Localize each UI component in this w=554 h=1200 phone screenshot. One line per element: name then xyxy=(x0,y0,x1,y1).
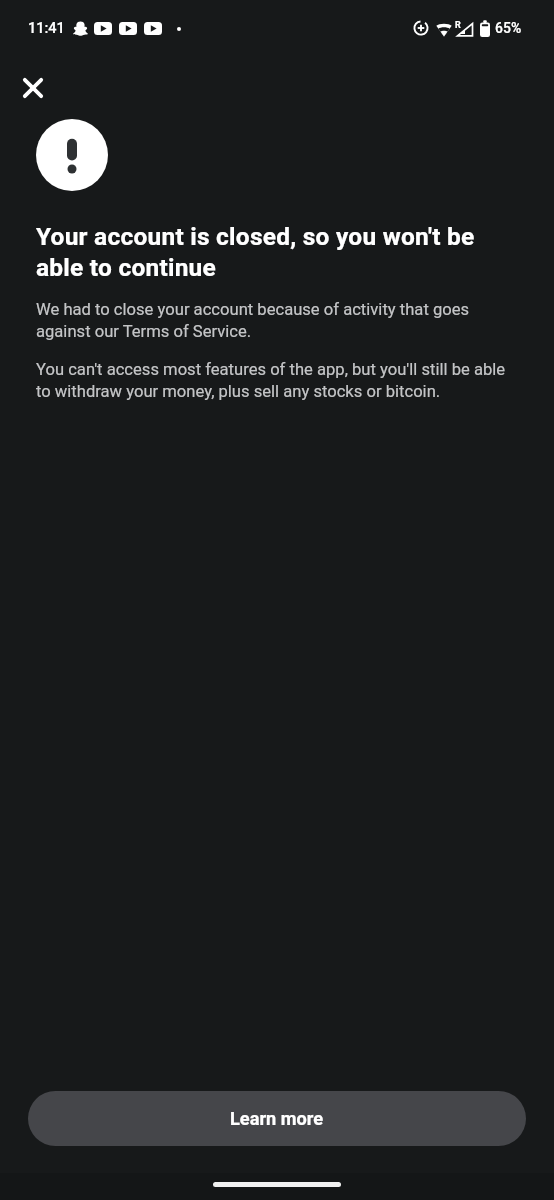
staticText: Learn more xyxy=(230,1108,324,1129)
staticText: R xyxy=(455,20,461,31)
staticText: Your account is closed, so you won't be … xyxy=(36,220,496,282)
staticText: You can't access most features of the ap… xyxy=(36,358,518,402)
staticText: 11:41 xyxy=(28,20,65,37)
staticText: 65% xyxy=(495,20,522,36)
button[interactable]: Learn more xyxy=(28,1091,526,1146)
button[interactable]: Close xyxy=(9,64,57,112)
staticText: We had to close your account because of … xyxy=(36,298,518,342)
